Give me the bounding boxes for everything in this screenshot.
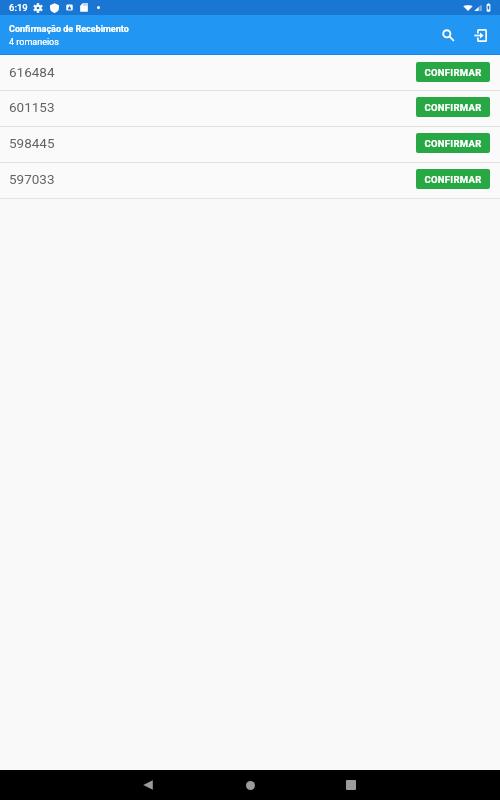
staticText: CONFIRMAR [424, 102, 482, 113]
staticText: 601153 [9, 99, 55, 115]
button[interactable]: 616484 [0, 56, 500, 90]
button[interactable]: Sair [464, 16, 496, 54]
staticText: 598445 [9, 135, 55, 151]
button[interactable]: Início [230, 770, 270, 800]
button[interactable]: Recentes [331, 770, 371, 800]
button[interactable]: CONFIRMAR [416, 62, 490, 82]
button[interactable]: CONFIRMAR [416, 133, 490, 153]
staticText: 616484 [9, 64, 55, 80]
staticText: CONFIRMAR [424, 174, 482, 185]
staticText: Confirmação de Recebimento [9, 24, 129, 35]
staticText: CONFIRMAR [424, 67, 482, 78]
button[interactable]: Pesquisar [431, 16, 464, 54]
button[interactable]: 598445 [0, 127, 500, 162]
staticText: CONFIRMAR [424, 138, 482, 149]
staticText: 4 romaneios [9, 37, 59, 48]
button[interactable]: Voltar [128, 770, 168, 800]
button[interactable]: 601153 [0, 91, 500, 126]
button[interactable]: CONFIRMAR [416, 97, 490, 117]
button[interactable]: 597033 [0, 163, 500, 198]
staticText: 6:19 [9, 2, 28, 13]
button[interactable]: CONFIRMAR [416, 169, 490, 189]
staticText: 597033 [9, 171, 55, 187]
